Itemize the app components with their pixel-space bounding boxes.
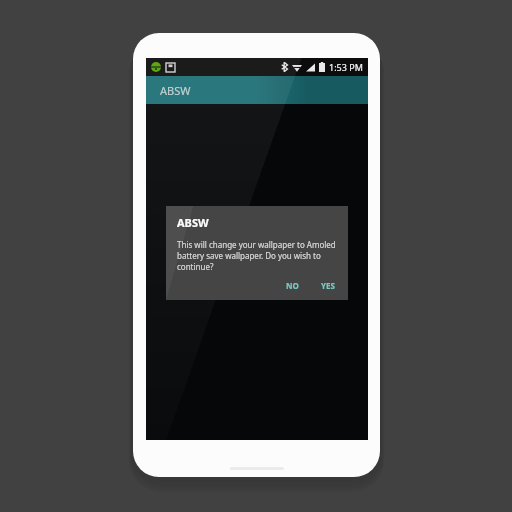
- other: Storage: [166, 63, 175, 72]
- button[interactable]: NO: [279, 276, 306, 295]
- staticText: 1:53 PM: [329, 61, 363, 73]
- staticText: ABSW: [160, 83, 191, 98]
- other: Wi-Fi: [292, 63, 302, 72]
- other: Battery: [319, 62, 325, 72]
- other: App notification: [151, 62, 161, 72]
- other: Cellular signal: [306, 63, 315, 72]
- button[interactable]: YES: [314, 276, 342, 295]
- staticText: ABSW: [177, 215, 209, 230]
- staticText: YES: [321, 280, 335, 291]
- staticText: This will change your wallpaper to Amole…: [177, 239, 337, 272]
- other: Bluetooth: [281, 62, 288, 72]
- staticText: NO: [286, 280, 299, 291]
- button[interactable]: ABSW: [146, 76, 368, 104]
